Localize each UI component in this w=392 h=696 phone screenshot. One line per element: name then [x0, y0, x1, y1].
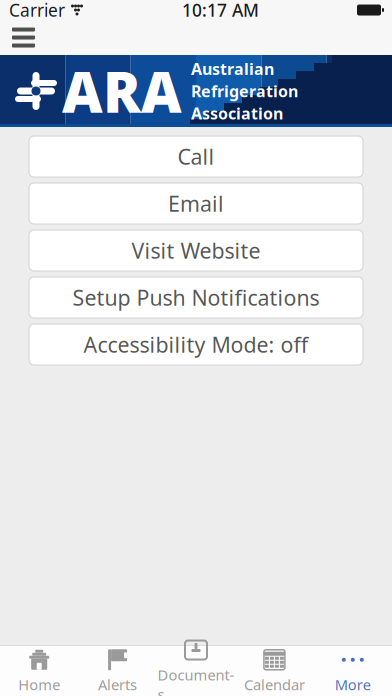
- staticText: Call: [177, 142, 214, 171]
- staticText: ARA: [62, 54, 182, 128]
- staticText: Documents: [157, 665, 234, 696]
- staticText: Visit Website: [131, 236, 260, 265]
- staticText: 10:17 AM: [182, 0, 259, 21]
- staticText: Refrigeration: [191, 80, 298, 102]
- staticText: Carrier: [9, 0, 65, 21]
- button[interactable]: Visit Website: [29, 230, 363, 271]
- staticText: Association: [191, 103, 283, 124]
- staticText: Home: [18, 675, 60, 694]
- staticText: Calendar: [244, 675, 305, 694]
- button[interactable]: Home: [0, 646, 78, 696]
- button[interactable]: Menu: [0, 21, 47, 53]
- staticText: Australian: [191, 58, 274, 79]
- staticText: Alerts: [98, 675, 137, 694]
- staticText: Accessibility Mode: off: [83, 330, 308, 359]
- button[interactable]: Calendar: [235, 646, 314, 696]
- button[interactable]: Documents: [157, 646, 235, 696]
- button[interactable]: Alerts: [78, 646, 157, 696]
- button[interactable]: Setup Push Notifications: [29, 277, 363, 318]
- button[interactable]: Accessibility Mode: off: [29, 324, 363, 365]
- button[interactable]: Call: [29, 136, 363, 177]
- staticText: Setup Push Notifications: [72, 283, 319, 312]
- staticText: More: [335, 675, 371, 694]
- button[interactable]: Email: [29, 183, 363, 224]
- staticText: Email: [168, 189, 224, 218]
- button[interactable]: More: [314, 646, 392, 696]
